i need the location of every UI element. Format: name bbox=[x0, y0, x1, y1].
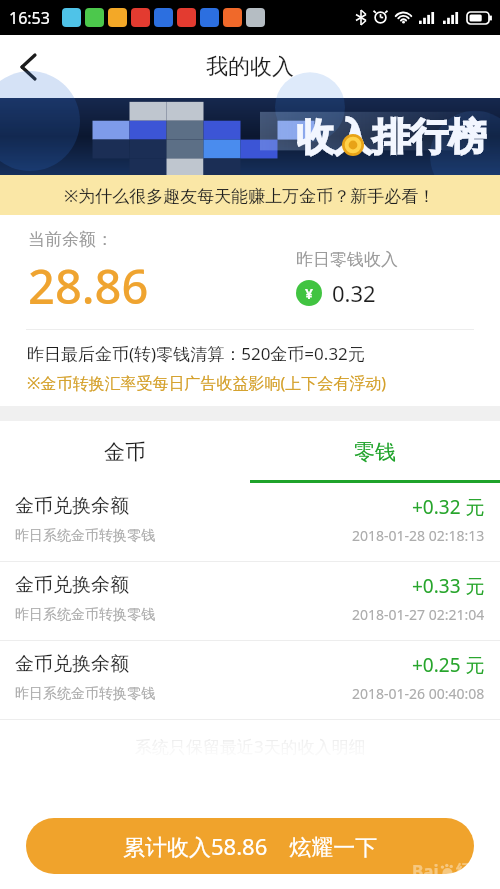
staticText: 昨日系统金币转换零钱 bbox=[15, 606, 155, 624]
button[interactable]: 金币 bbox=[0, 421, 250, 483]
button[interactable]: 金币兑换余额 bbox=[0, 483, 500, 562]
staticText: 金币兑换余额 bbox=[15, 494, 129, 518]
staticText: 0.32 bbox=[332, 278, 376, 308]
staticText: 金币兑换余额 bbox=[15, 573, 129, 597]
button[interactable]: 累计收入58.86 炫耀一下 bbox=[26, 818, 474, 874]
staticText: +0.25 元 bbox=[412, 652, 485, 678]
button[interactable]: 收入排行榜 bbox=[0, 98, 500, 175]
staticText: 系统只保留最近3天的收入明细 bbox=[135, 735, 366, 758]
staticText: ※为什么很多趣友每天能赚上万金币？新手必看！ bbox=[64, 184, 436, 207]
staticText: 收 bbox=[296, 113, 334, 161]
button[interactable]: 金币兑换余额 bbox=[0, 562, 500, 641]
staticText: 28.86 bbox=[28, 254, 149, 318]
staticText: 2018-01-28 02:18:13 bbox=[352, 526, 485, 545]
staticText: Bai bbox=[412, 860, 439, 883]
button[interactable]: 金币兑换余额 bbox=[0, 641, 500, 720]
staticText: 昨日系统金币转换零钱 bbox=[15, 685, 155, 703]
staticText: 2018-01-27 02:21:04 bbox=[352, 605, 485, 624]
staticText: +0.33 元 bbox=[412, 573, 485, 599]
staticText: 我的收入 bbox=[206, 53, 294, 81]
staticText: 昨日零钱收入 bbox=[296, 249, 398, 270]
staticText: 排行榜 bbox=[372, 113, 486, 161]
staticText: 零钱 bbox=[354, 439, 396, 465]
staticText: 金币兑换余额 bbox=[15, 652, 129, 676]
staticText: 金币 bbox=[104, 439, 146, 465]
staticText: ¥ bbox=[305, 284, 314, 303]
button[interactable]: ※为什么很多趣友每天能赚上万金币？新手必看！ bbox=[0, 175, 500, 215]
staticText: 16:53 bbox=[9, 7, 50, 29]
button[interactable]: Back bbox=[0, 39, 56, 95]
staticText: ※金币转换汇率受每日广告收益影响(上下会有浮动) bbox=[27, 372, 386, 394]
staticText: 经验 bbox=[456, 862, 486, 881]
button[interactable]: 零钱 bbox=[250, 421, 500, 483]
staticText: 累计收入58.86 炫耀一下 bbox=[123, 831, 378, 861]
staticText: 昨日最后金币(转)零钱清算：520金币=0.32元 bbox=[27, 342, 365, 365]
staticText: 2018-01-26 00:40:08 bbox=[352, 684, 485, 703]
staticText: +0.32 元 bbox=[412, 494, 485, 520]
staticText: 当前余额： bbox=[28, 229, 113, 250]
staticText: 入 bbox=[334, 113, 372, 161]
staticText: 昨日系统金币转换零钱 bbox=[15, 527, 155, 545]
